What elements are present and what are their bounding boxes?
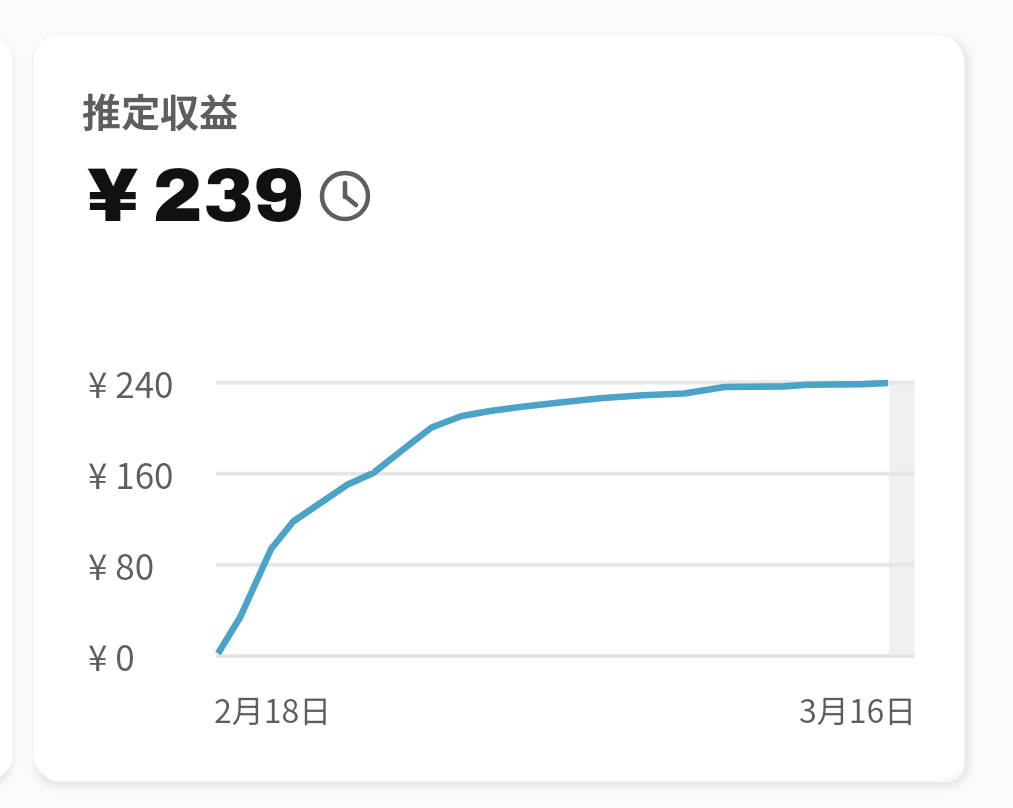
staticText: ¥ 0 (88, 630, 135, 681)
button[interactable]: 推定収益 (33, 35, 964, 780)
staticText: 2月18日 (214, 686, 332, 732)
staticText: ¥ 160 (88, 448, 174, 499)
staticText: ¥ 240 (88, 357, 174, 408)
staticText: 3月16日 (799, 686, 917, 732)
button[interactable]: Estimated earnings are pending (319, 170, 371, 222)
staticText: ¥ 239 (87, 154, 305, 237)
staticText: ¥ 80 (88, 539, 155, 590)
staticText: 推定収益 (82, 82, 239, 138)
